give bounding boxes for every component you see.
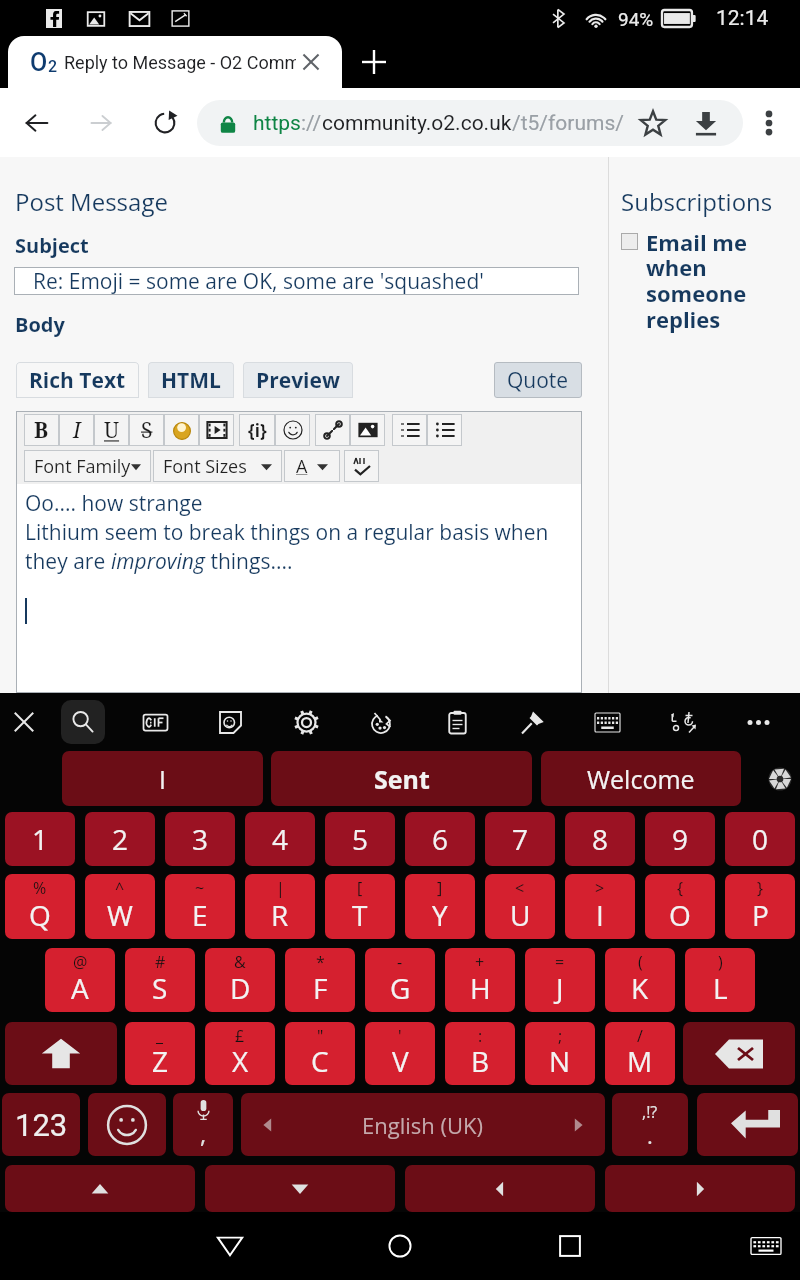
button[interactable]: Space xyxy=(241,1093,605,1156)
button[interactable]: { xyxy=(645,874,715,939)
button[interactable]: Arrow Left xyxy=(405,1165,595,1212)
button[interactable]: Insert xyxy=(239,414,275,446)
button[interactable]: _ xyxy=(125,1022,195,1085)
button[interactable]: > xyxy=(565,874,635,939)
button[interactable]: Emoji xyxy=(88,1093,166,1156)
button[interactable]: # xyxy=(125,948,195,1012)
button[interactable]: Welcome xyxy=(541,751,741,806)
button[interactable]: O xyxy=(8,36,342,88)
staticText: ,!? xyxy=(642,1101,658,1123)
button[interactable]: https xyxy=(197,100,743,146)
button[interactable]: Text colour xyxy=(284,450,340,482)
button[interactable]: Font Sizes xyxy=(153,450,282,482)
button[interactable]: Reload xyxy=(146,104,184,142)
button[interactable]: / xyxy=(605,1022,675,1085)
button[interactable]: Close keyboard xyxy=(4,702,44,742)
button[interactable]: Image xyxy=(350,414,385,446)
button[interactable]: : xyxy=(445,1022,515,1085)
button[interactable]: Strikethrough xyxy=(129,414,164,446)
button[interactable]: 4 xyxy=(245,812,315,866)
button[interactable]: Link xyxy=(315,414,350,446)
button[interactable]: 3 xyxy=(165,812,235,866)
button[interactable]: % xyxy=(5,874,75,939)
button[interactable]: 7 xyxy=(485,812,555,866)
button[interactable]: Numbered list xyxy=(392,414,427,446)
button[interactable]: Keyboard layout xyxy=(586,701,628,743)
button[interactable]: ] xyxy=(405,874,475,939)
button[interactable]: Settings xyxy=(285,701,327,743)
button[interactable]: ^ xyxy=(85,874,155,939)
button[interactable]: 6 xyxy=(405,812,475,866)
button[interactable]: 5 xyxy=(325,812,395,866)
button[interactable]: More xyxy=(737,701,779,743)
button[interactable]: Back xyxy=(208,1224,252,1268)
button[interactable]: Emoticon xyxy=(164,414,199,446)
button[interactable]: + xyxy=(445,948,515,1012)
button[interactable]: Hide keyboard xyxy=(746,1226,786,1266)
button[interactable]: Translate xyxy=(662,701,704,743)
button[interactable]: Video xyxy=(199,414,234,446)
button[interactable]: } xyxy=(725,874,795,939)
button[interactable]: Shift xyxy=(5,1022,117,1085)
button[interactable]: Re: Emoji = some are OK, some are 'squas… xyxy=(14,267,579,295)
button[interactable]: Search xyxy=(61,700,105,744)
button[interactable]: Home xyxy=(378,1224,422,1268)
button[interactable]: Pin xyxy=(511,701,553,743)
button[interactable]: HTML xyxy=(148,362,234,398)
button[interactable]: " xyxy=(285,1022,355,1085)
button[interactable]: Preview xyxy=(243,362,353,398)
button[interactable]: GIF xyxy=(134,701,176,743)
button[interactable]: New tab xyxy=(356,44,392,80)
button[interactable]: Clipboard xyxy=(436,701,478,743)
button[interactable]: 123 xyxy=(2,1093,80,1156)
button[interactable]: Font Family xyxy=(24,450,151,482)
button[interactable]: ; xyxy=(525,1022,595,1085)
button[interactable]: Close tab xyxy=(296,47,326,77)
button[interactable]: ~ xyxy=(165,874,235,939)
button[interactable]: Voice input xyxy=(173,1093,233,1156)
button[interactable]: Italic xyxy=(59,414,94,446)
button[interactable]: Enter xyxy=(697,1093,798,1156)
button[interactable]: Arrow Up xyxy=(5,1165,195,1212)
button[interactable]: Spell check xyxy=(344,450,379,482)
button[interactable]: Quote xyxy=(494,362,582,398)
button[interactable]: More options xyxy=(753,107,785,139)
button[interactable]: ' xyxy=(365,1022,435,1085)
button[interactable]: < xyxy=(485,874,555,939)
button[interactable]: [ xyxy=(325,874,395,939)
button[interactable]: Download xyxy=(689,106,723,140)
button[interactable]: Stickers xyxy=(209,701,251,743)
button[interactable]: £ xyxy=(205,1022,275,1085)
button[interactable]: 2 xyxy=(85,812,155,866)
button[interactable]: Bold xyxy=(24,414,59,446)
button[interactable]: Back xyxy=(18,104,56,142)
button[interactable]: Smiley xyxy=(275,414,310,446)
button[interactable]: Arrow Right xyxy=(605,1165,795,1212)
button[interactable]: Arrow Down xyxy=(205,1165,395,1212)
button[interactable]: Recents xyxy=(548,1224,592,1268)
button[interactable]: | xyxy=(245,874,315,939)
button[interactable]: * xyxy=(285,948,355,1012)
button[interactable]: Forward xyxy=(82,104,120,142)
button[interactable]: & xyxy=(205,948,275,1012)
button[interactable]: ,!? xyxy=(612,1093,688,1156)
button[interactable]: 9 xyxy=(645,812,715,866)
button[interactable]: Bullet list xyxy=(427,414,462,446)
button[interactable]: = xyxy=(525,948,595,1012)
button[interactable]: 0 xyxy=(725,812,795,866)
button[interactable]: - xyxy=(365,948,435,1012)
button[interactable]: Bookmark xyxy=(634,104,672,142)
button[interactable]: Rich Text xyxy=(16,362,139,398)
button[interactable]: Theme xyxy=(765,764,795,794)
button[interactable]: ( xyxy=(605,948,675,1012)
button[interactable]: ) xyxy=(685,948,755,1012)
button[interactable]: 1 xyxy=(5,812,75,866)
button[interactable]: Themes xyxy=(360,701,402,743)
button[interactable]: @ xyxy=(45,948,115,1012)
button[interactable]: 8 xyxy=(565,812,635,866)
button[interactable]: I xyxy=(62,751,263,806)
button[interactable]: Underline xyxy=(94,414,129,446)
button[interactable]: Sent xyxy=(271,751,532,806)
button[interactable]: Email me when someone replies xyxy=(621,233,638,250)
button[interactable]: Backspace xyxy=(683,1022,795,1085)
